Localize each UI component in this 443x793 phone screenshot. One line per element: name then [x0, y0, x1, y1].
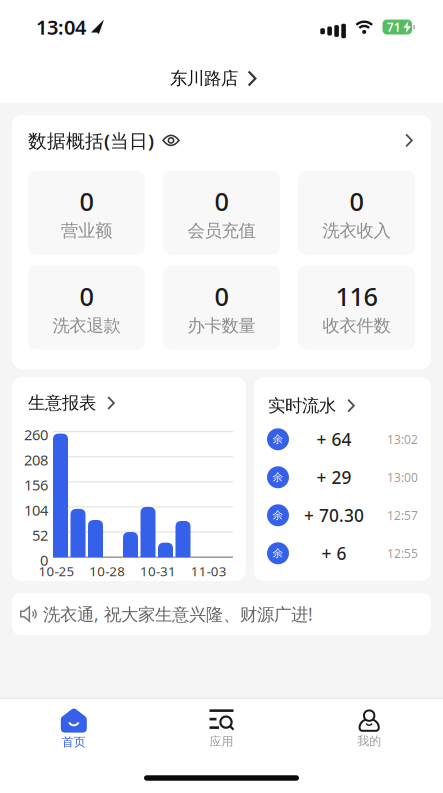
- staticText: 52: [32, 525, 48, 545]
- button[interactable]: 数据概括(当日): [12, 115, 431, 369]
- staticText: 收衣件数: [322, 315, 390, 336]
- staticText: 0: [79, 279, 93, 313]
- staticText: 东川路店: [170, 68, 238, 89]
- staticText: 13:04: [36, 14, 86, 40]
- staticText: 10-31: [140, 562, 176, 580]
- staticText: 实时流水: [268, 395, 336, 416]
- button[interactable]: 东川路店: [177, 54, 266, 103]
- staticText: 洗衣通, 祝大家生意兴隆、财源广进!: [43, 602, 313, 625]
- staticText: 会员充值: [187, 220, 255, 241]
- staticText: 余: [272, 509, 283, 522]
- staticText: 生意报表: [28, 392, 96, 414]
- staticText: 260: [24, 425, 48, 444]
- staticText: 办卡数量: [187, 315, 255, 336]
- staticText: 12:55: [387, 545, 418, 561]
- staticText: 数据概括(当日): [28, 128, 154, 153]
- button[interactable]: 应用: [148, 701, 295, 757]
- button[interactable]: 隐藏数据: [162, 134, 180, 147]
- staticText: 0: [40, 550, 48, 570]
- staticText: 10-25: [38, 562, 74, 580]
- staticText: 余: [272, 433, 283, 446]
- staticText: 156: [24, 475, 48, 495]
- staticText: 0: [214, 184, 228, 218]
- staticText: 0: [214, 279, 228, 313]
- button[interactable]: 生意报表: [12, 377, 246, 581]
- staticText: 余: [272, 471, 283, 484]
- staticText: 余: [272, 547, 283, 560]
- staticText: + 6: [321, 542, 346, 565]
- button[interactable]: 洗衣通, 祝大家生意兴隆、财源广进!: [12, 593, 431, 635]
- staticText: 104: [24, 500, 48, 520]
- staticText: 营业额: [61, 220, 112, 241]
- staticText: 应用: [209, 734, 233, 749]
- staticText: 0: [79, 184, 93, 218]
- staticText: 11-03: [191, 562, 227, 580]
- staticText: 13:00: [387, 469, 418, 485]
- staticText: 我的: [357, 734, 381, 748]
- staticText: 13:02: [387, 431, 418, 447]
- button[interactable]: 实时流水: [254, 377, 431, 581]
- staticText: 洗衣收入: [322, 220, 390, 241]
- staticText: 洗衣退款: [52, 315, 120, 336]
- staticText: + 70.30: [304, 504, 364, 527]
- button[interactable]: 我的: [295, 701, 443, 757]
- staticText: 208: [24, 450, 48, 469]
- staticText: 10-28: [89, 562, 125, 580]
- staticText: 116: [335, 279, 377, 313]
- staticText: 71: [387, 19, 401, 35]
- staticText: 0: [349, 184, 363, 218]
- staticText: 12:57: [387, 507, 418, 523]
- staticText: 首页: [62, 735, 86, 749]
- staticText: + 64: [316, 428, 351, 451]
- staticText: + 29: [316, 466, 351, 489]
- button[interactable]: 首页: [0, 701, 148, 757]
